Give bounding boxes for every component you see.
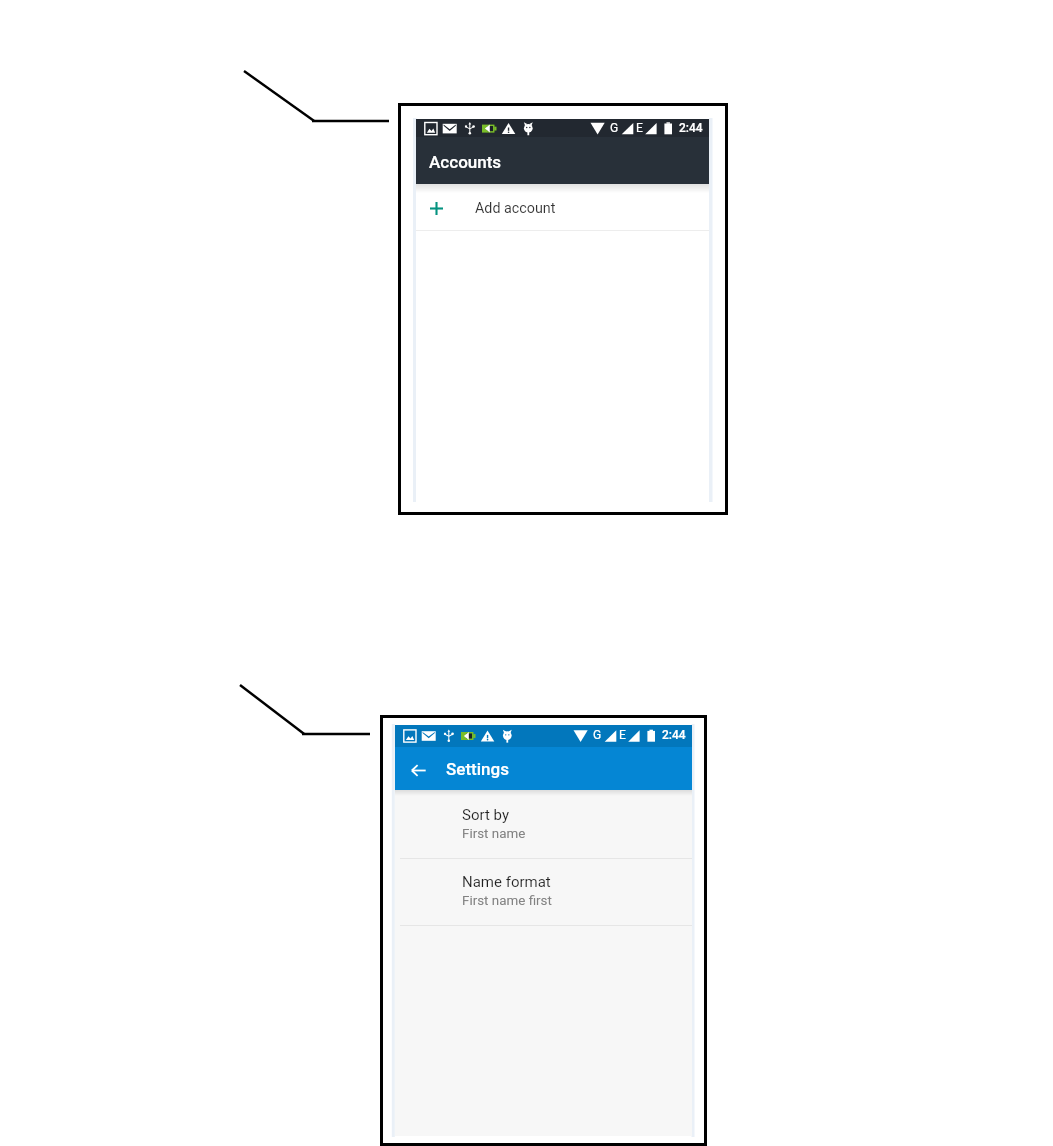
staticText: Add account bbox=[475, 200, 556, 217]
staticText: Settings bbox=[446, 759, 509, 779]
button[interactable]: Name format bbox=[395, 859, 692, 925]
button[interactable]: Back bbox=[399, 750, 438, 789]
staticText: 2:44 bbox=[679, 121, 703, 135]
staticText: E bbox=[619, 728, 626, 742]
button[interactable]: Sort by bbox=[395, 792, 692, 858]
staticText: Accounts bbox=[429, 152, 502, 172]
staticText: Sort by bbox=[462, 806, 509, 824]
staticText: First name first bbox=[462, 893, 552, 909]
button[interactable]: Add account bbox=[416, 186, 709, 231]
staticText: G bbox=[593, 728, 602, 742]
staticText: E bbox=[636, 121, 643, 135]
staticText: First name bbox=[462, 826, 526, 842]
staticText: Name format bbox=[462, 873, 551, 891]
staticText: G bbox=[610, 121, 619, 135]
staticText: 2:44 bbox=[662, 728, 686, 742]
